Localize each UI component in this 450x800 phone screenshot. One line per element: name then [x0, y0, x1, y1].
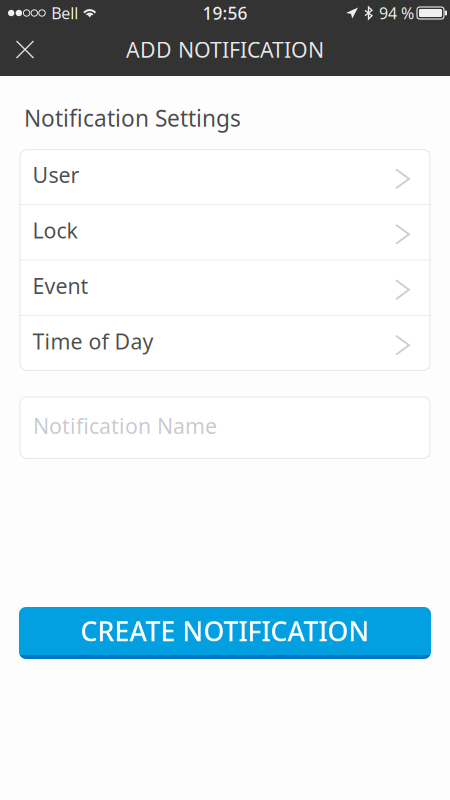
- staticText: Notification Name: [33, 411, 217, 440]
- staticText: 19:56: [202, 1, 247, 24]
- button[interactable]: Close: [0, 26, 50, 76]
- button[interactable]: Time of Day: [20, 316, 430, 370]
- button[interactable]: Event: [20, 260, 430, 315]
- button[interactable]: Notification Name: [0, 397, 450, 458]
- staticText: Notification Settings: [24, 103, 241, 133]
- staticText: Event: [32, 272, 88, 300]
- button[interactable]: Lock: [20, 205, 430, 260]
- staticText: CREATE NOTIFICATION: [80, 613, 369, 649]
- button[interactable]: User: [20, 150, 430, 204]
- staticText: ADD NOTIFICATION: [126, 35, 324, 64]
- staticText: User: [32, 161, 79, 189]
- staticText: Bell: [51, 2, 78, 24]
- staticText: Time of Day: [32, 327, 153, 355]
- staticText: Lock: [32, 216, 77, 244]
- staticText: 94 %: [379, 2, 414, 24]
- button[interactable]: CREATE NOTIFICATION: [0, 607, 450, 659]
